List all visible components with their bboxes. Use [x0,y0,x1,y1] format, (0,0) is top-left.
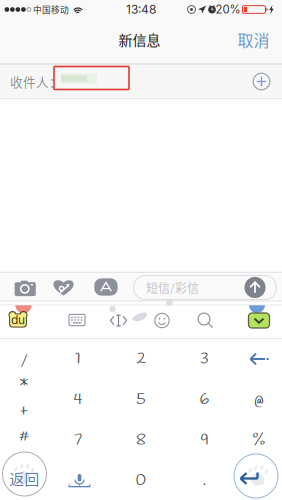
button[interactable]: Camera [10,274,40,302]
staticText: 13:48 [126,2,156,17]
button[interactable]: Input method [4,305,32,333]
staticText: 收件人： [10,72,62,91]
staticText: 新信息 [118,29,160,50]
button[interactable]: 8 [110,420,172,460]
button[interactable]: Voice input [52,461,106,500]
button[interactable]: Search [191,307,219,333]
button[interactable]: 7 [47,420,109,460]
button[interactable]: Send [242,274,268,300]
button[interactable]: Digital Touch [48,273,78,301]
button[interactable]: Hide keyboard [245,308,273,332]
staticText: / [20,351,27,371]
button[interactable]: Keyboard [63,307,91,333]
button[interactable]: % [236,420,282,460]
button[interactable]: + [2,399,46,423]
button[interactable]: . [173,460,235,500]
button[interactable]: 4 [47,379,109,419]
staticText: 短信/彩信 [146,279,199,296]
button[interactable]: 5 [110,379,172,419]
staticText: 4 [73,388,82,411]
staticText: 20% [215,3,240,16]
staticText: 9 [200,429,208,451]
staticText: % [252,428,265,451]
button[interactable]: 3 [173,339,235,379]
staticText: 1 [75,348,81,370]
button[interactable]: / [2,349,46,373]
staticText: + [20,399,28,422]
button[interactable]: Enter [233,453,278,498]
staticText: # [19,424,29,447]
button[interactable]: Move cursor [104,307,132,333]
staticText: du [11,313,25,327]
staticText: . [202,469,206,492]
button[interactable]: Emoji [148,307,176,333]
staticText: 取消 [237,28,269,51]
staticText: 5 [136,388,146,411]
button[interactable]: @ [236,379,282,419]
button[interactable]: 0 [110,460,172,500]
staticText: 7 [74,429,82,451]
button[interactable]: 1 [47,339,109,379]
button[interactable]: Apps [91,273,121,301]
button[interactable]: Backspace [236,339,282,379]
button[interactable]: * [2,377,46,401]
button[interactable]: # [2,424,46,448]
staticText: 0 [135,469,146,492]
staticText: 8 [136,429,146,451]
button[interactable]: Return [2,451,47,496]
staticText: 6 [199,388,209,411]
staticText: * [18,373,29,405]
button[interactable]: Add contact [246,66,276,96]
staticText: 3 [200,348,209,370]
staticText: 返回 [9,468,39,489]
button[interactable]: 2 [110,339,172,379]
staticText: 中国移动 [33,3,69,16]
button[interactable]: 9 [173,420,235,460]
staticText: 2 [136,348,145,370]
button[interactable]: 6 [173,379,235,419]
button[interactable]: 取消 [231,24,275,54]
staticText: @ [254,387,264,412]
